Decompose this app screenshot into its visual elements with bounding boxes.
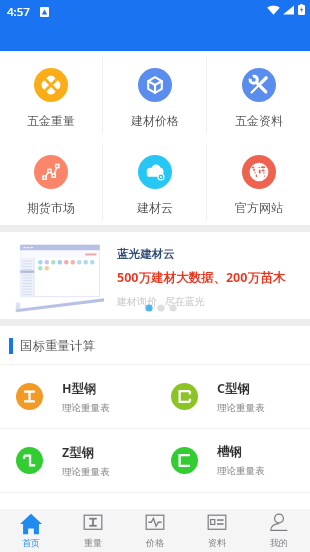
staticText: 理论重量表 — [217, 402, 265, 414]
staticText: 蓝光建材云 — [117, 247, 175, 261]
button[interactable]: 资料 — [186, 509, 248, 552]
staticText: 资料 — [208, 537, 226, 548]
button[interactable]: 五金重量 — [0, 51, 102, 138]
staticText: 重量 — [84, 537, 102, 548]
button[interactable]: 价格 — [124, 509, 186, 552]
staticText: 国标重量计算 — [20, 338, 95, 354]
button[interactable]: C型钢 — [155, 365, 310, 428]
button[interactable]: 我的 — [248, 509, 310, 552]
staticText: 我的 — [270, 537, 288, 548]
staticText: 期货市场 — [27, 200, 75, 215]
button[interactable]: 期货市场 — [0, 138, 102, 225]
button[interactable]: 官方网站 — [207, 138, 310, 225]
staticText: 五金重量 — [27, 113, 75, 128]
button[interactable]: 首页 — [0, 509, 62, 552]
staticText: 建材价格 — [131, 113, 179, 128]
staticText: 建材询价 尽在蓝光 — [117, 294, 205, 308]
staticText: 价格 — [146, 537, 164, 548]
button[interactable]: 建材云 — [103, 138, 206, 225]
staticText: Z型钢 — [62, 444, 95, 461]
staticText: 建材云 — [137, 200, 173, 215]
button[interactable]: 重量 — [62, 509, 124, 552]
staticText: 理论重量表 — [62, 466, 110, 478]
button[interactable]: Z型钢 — [0, 429, 155, 492]
staticText: C型钢 — [217, 380, 251, 397]
button[interactable]: 建材价格 — [103, 51, 206, 138]
staticText: 500万建材大数据、200万苗木 — [117, 269, 285, 286]
staticText: 五金资料 — [235, 113, 283, 128]
staticText: 4:57 — [7, 4, 30, 20]
button[interactable]: 蓝光建材云 — [0, 232, 310, 319]
staticText: H型钢 — [62, 380, 97, 397]
button[interactable]: 五金资料 — [207, 51, 310, 138]
button[interactable]: H型钢 — [0, 365, 155, 428]
staticText: 槽钢 — [217, 444, 242, 460]
button[interactable]: 槽钢 — [155, 429, 310, 492]
staticText: 首页 — [22, 537, 40, 548]
staticText: 理论重量表 — [217, 465, 265, 477]
staticText: 官方网站 — [235, 200, 283, 215]
staticText: 理论重量表 — [62, 402, 110, 414]
